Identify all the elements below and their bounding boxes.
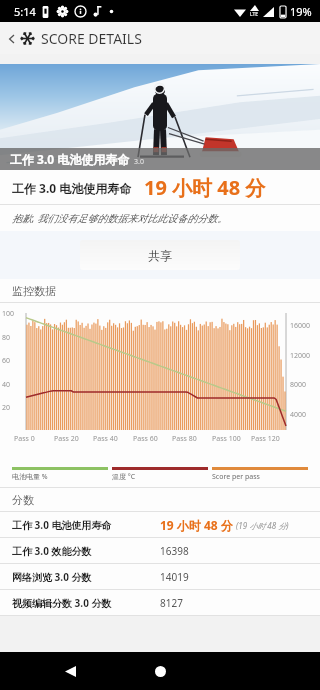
staticText: 60 <box>2 356 11 366</box>
staticText: 80 <box>2 333 11 343</box>
button[interactable]: Back <box>4 31 20 47</box>
staticText: 温度 °C <box>112 472 136 482</box>
staticText: 共享 <box>148 248 172 263</box>
button[interactable]: Home <box>146 657 174 685</box>
button[interactable]: 共享 <box>80 240 240 270</box>
staticText: 网络浏览 3.0 分数 <box>12 570 92 584</box>
staticText: 16398 <box>160 544 189 558</box>
staticText: 工作 3.0 电池使用寿命 <box>12 180 132 196</box>
staticText: 12000 <box>290 351 311 361</box>
staticText: Pass 100 <box>212 434 241 444</box>
staticText: 16000 <box>290 321 311 331</box>
staticText: LTE <box>250 11 259 18</box>
staticText: 14019 <box>160 570 189 584</box>
staticText: Pass 80 <box>172 434 197 444</box>
staticText: 监控数据 <box>12 284 56 298</box>
staticText: Pass 0 <box>14 434 35 444</box>
staticText: 视频编辑分数 3.0 分数 <box>12 596 112 610</box>
staticText: 19% <box>290 4 312 19</box>
staticText: Pass 120 <box>251 434 280 444</box>
staticText: 分数 <box>12 493 34 507</box>
staticText: 电池电量 % <box>12 472 48 482</box>
staticText: 19 小时 48 分 <box>160 517 233 533</box>
staticText: 100 <box>2 309 15 319</box>
button[interactable]: Back <box>56 657 84 685</box>
staticText: Score per pass <box>212 472 260 482</box>
staticText: 工作 3.0 电池使用寿命 <box>10 151 130 167</box>
staticText: 工作 3.0 电池使用寿命 <box>12 518 112 532</box>
staticText: SCORE DETAILS <box>41 29 142 48</box>
staticText: 3.0 <box>134 157 144 167</box>
staticText: 工作 3.0 效能分数 <box>12 544 92 558</box>
staticText: 40 <box>2 380 11 390</box>
staticText: Pass 20 <box>54 434 79 444</box>
staticText: Pass 60 <box>133 434 158 444</box>
staticText: 20 <box>2 403 11 413</box>
staticText: Pass 40 <box>93 434 118 444</box>
staticText: 19 小时 48 分 <box>144 174 266 201</box>
staticText: 8127 <box>160 596 183 610</box>
staticText: 抱歉, 我们没有足够的数据来对比此设备的分数。 <box>12 211 228 225</box>
staticText: 5:14 <box>14 4 36 19</box>
staticText: 4000 <box>290 410 307 420</box>
staticText: (19 小时 48 分) <box>236 520 289 531</box>
staticText: 8000 <box>290 380 307 390</box>
